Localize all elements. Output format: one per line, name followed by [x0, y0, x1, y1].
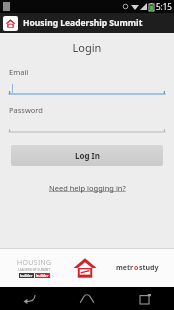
staticText: Email — [9, 67, 29, 77]
staticText: LEADERSHIP SUMMIT — [18, 268, 51, 272]
button[interactable]: Recent apps — [116, 287, 174, 310]
staticText: Need help logging in? — [49, 183, 126, 193]
staticText: 5:15 — [156, 1, 172, 12]
staticText: o — [134, 263, 139, 273]
staticText: builder — [36, 273, 49, 278]
button[interactable]: Email — [9, 67, 165, 95]
staticText: HOUSING — [17, 258, 52, 268]
staticText: builder — [20, 273, 33, 278]
button[interactable]: Association logo — [62, 257, 107, 279]
staticText: Log In — [75, 150, 100, 161]
button[interactable]: Home — [58, 287, 116, 310]
staticText: Housing Leadership Summit — [23, 17, 143, 29]
button[interactable]: Housing Leadership Summit — [0, 13, 174, 33]
staticText: Login — [0, 40, 174, 55]
button[interactable]: Need help logging in? — [47, 181, 128, 195]
staticText: metr — [116, 263, 134, 273]
button[interactable]: Back — [0, 287, 58, 310]
button[interactable]: metr — [107, 263, 168, 273]
staticText: study — [139, 263, 159, 273]
button[interactable]: Password — [9, 105, 165, 133]
button[interactable]: Log In — [11, 145, 163, 166]
button[interactable]: HOUSING — [6, 258, 62, 278]
staticText: Password — [9, 105, 43, 115]
